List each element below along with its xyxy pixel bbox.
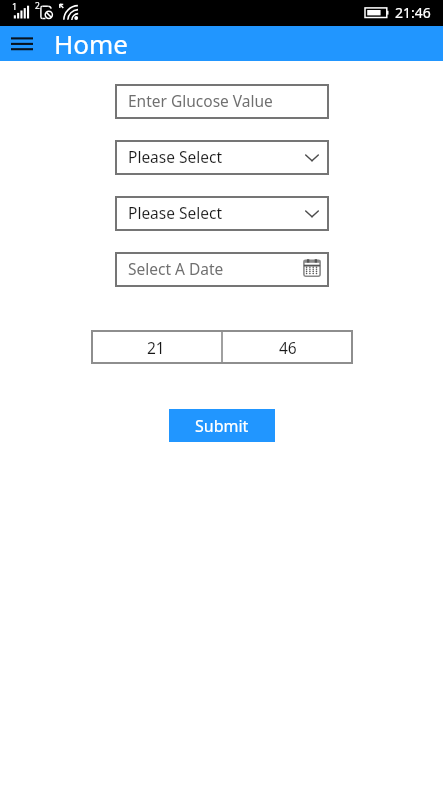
staticText: 2 — [35, 0, 40, 12]
staticText: Enter Glucose Value — [128, 90, 273, 111]
staticText: 1 — [12, 0, 18, 12]
staticText: Please Select — [128, 202, 223, 223]
staticText: Submit — [195, 415, 249, 437]
staticText: Select A Date — [128, 258, 224, 279]
button[interactable]: Select A Date — [115, 252, 329, 287]
staticText: 46 — [279, 337, 297, 358]
button[interactable]: 46 — [223, 330, 353, 364]
button[interactable]: 21 — [91, 330, 221, 364]
staticText: 21 — [147, 337, 165, 358]
staticText: Home — [54, 26, 128, 61]
button[interactable]: Please Select — [115, 140, 329, 175]
staticText: Please Select — [128, 146, 223, 167]
button[interactable]: Please Select — [115, 196, 329, 231]
button[interactable]: Open navigation menu — [0, 26, 45, 61]
staticText: 21:46 — [395, 3, 431, 22]
button[interactable]: Submit — [169, 409, 275, 442]
button[interactable]: Enter Glucose Value — [115, 84, 329, 119]
